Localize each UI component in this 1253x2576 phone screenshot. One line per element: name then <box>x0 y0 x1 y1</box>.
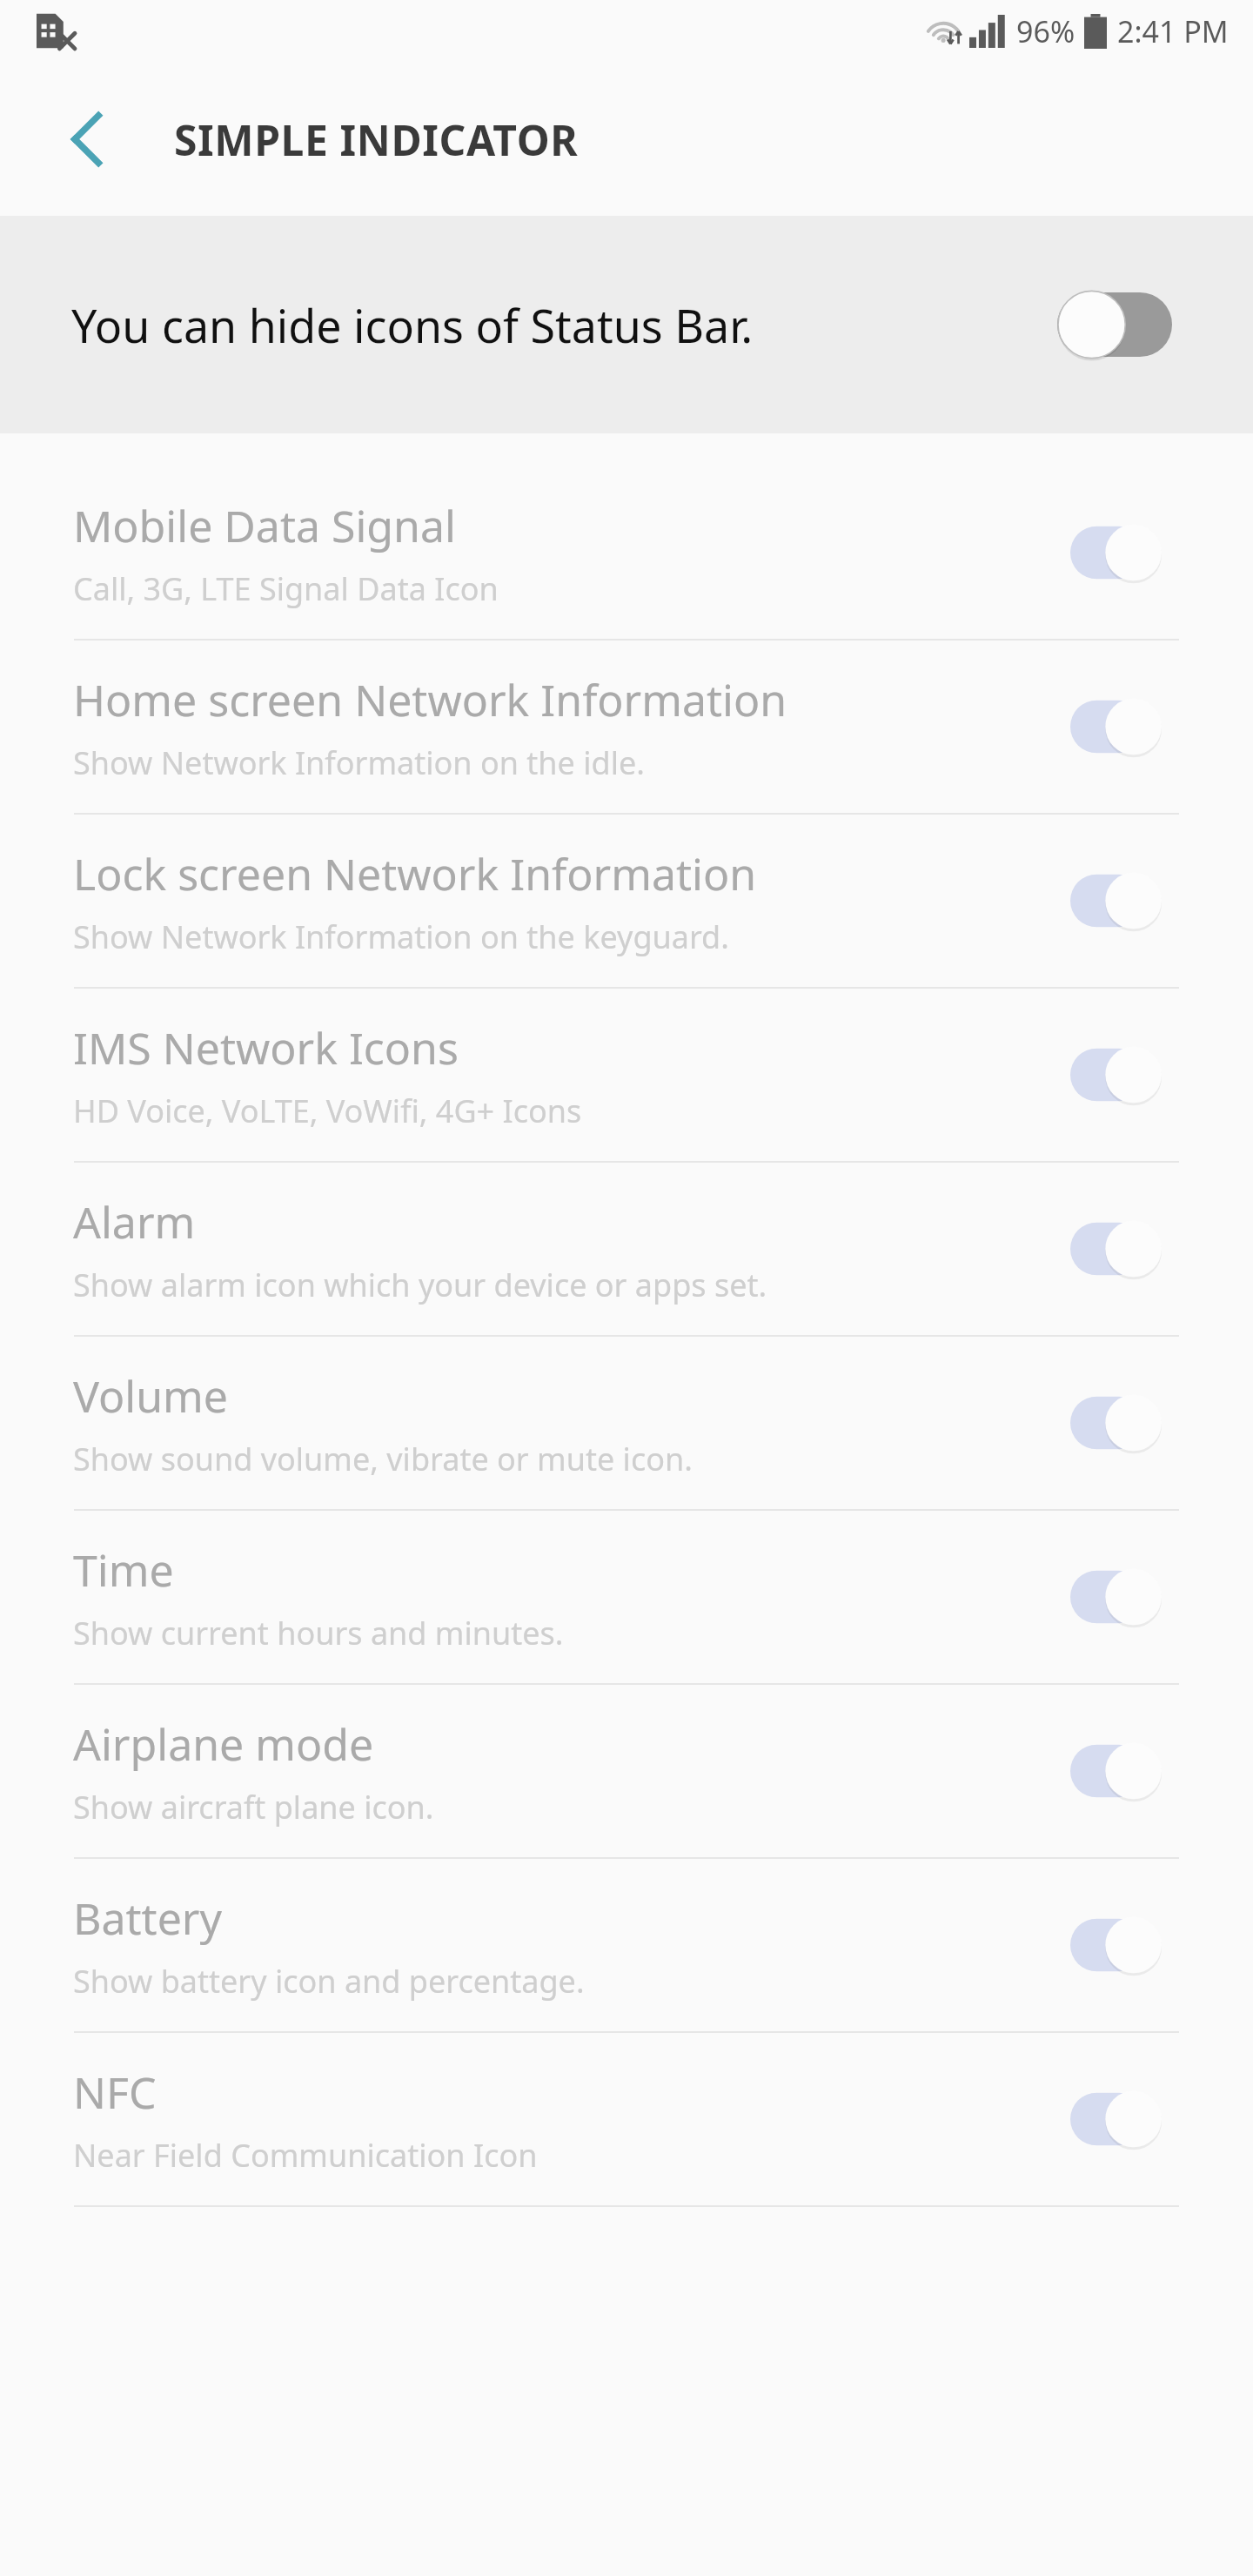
button[interactable]: IMS Network Icons <box>0 989 1253 1161</box>
staticText: SIMPLE INDICATOR <box>174 111 579 168</box>
staticText: Mobile Data Signal <box>73 496 456 555</box>
staticText: Near Field Communication Icon <box>73 2134 538 2177</box>
staticText: Show alarm icon which your device or app… <box>73 1264 767 1306</box>
button[interactable]: NFC <box>0 2033 1253 2205</box>
staticText: Airplane mode <box>73 1714 374 1774</box>
staticText: Home screen Network Information <box>73 670 787 729</box>
staticText: Show Network Information on the keyguard… <box>73 916 729 958</box>
button[interactable]: Home screen Network Information <box>0 641 1253 813</box>
button[interactable]: Back <box>42 94 132 184</box>
staticText: Volume <box>73 1366 228 1426</box>
button[interactable]: Volume <box>0 1337 1253 1509</box>
staticText: Lock screen Network Information <box>73 844 757 903</box>
button[interactable]: Battery <box>0 1859 1253 2031</box>
staticText: Show current hours and minutes. <box>73 1612 564 1654</box>
button[interactable]: Alarm <box>0 1163 1253 1335</box>
staticText: You can hide icons of Status Bar. <box>71 294 754 356</box>
staticText: Alarm <box>73 1192 196 1251</box>
button[interactable]: You can hide icons of Status Bar. <box>0 216 1253 433</box>
staticText: Show Network Information on the idle. <box>73 741 645 784</box>
button[interactable]: Mobile Data Signal <box>0 466 1253 639</box>
staticText: Show aircraft plane icon. <box>73 1786 434 1828</box>
staticText: 2:41 PM <box>1117 11 1229 51</box>
staticText: HD Voice, VoLTE, VoWifi, 4G+ Icons <box>73 1090 582 1132</box>
staticText: Call, 3G, LTE Signal Data Icon <box>73 567 499 610</box>
staticText: Show battery icon and percentage. <box>73 1960 585 2002</box>
button[interactable]: Airplane mode <box>0 1685 1253 1857</box>
staticText: NFC <box>73 2063 157 2122</box>
staticText: Battery <box>73 1888 222 1948</box>
staticText: 96% <box>1016 11 1075 51</box>
staticText: Time <box>73 1540 174 1600</box>
button[interactable]: Time <box>0 1511 1253 1683</box>
staticText: Show sound volume, vibrate or mute icon. <box>73 1438 693 1480</box>
staticText: IMS Network Icons <box>73 1018 459 1077</box>
button[interactable]: Lock screen Network Information <box>0 815 1253 987</box>
